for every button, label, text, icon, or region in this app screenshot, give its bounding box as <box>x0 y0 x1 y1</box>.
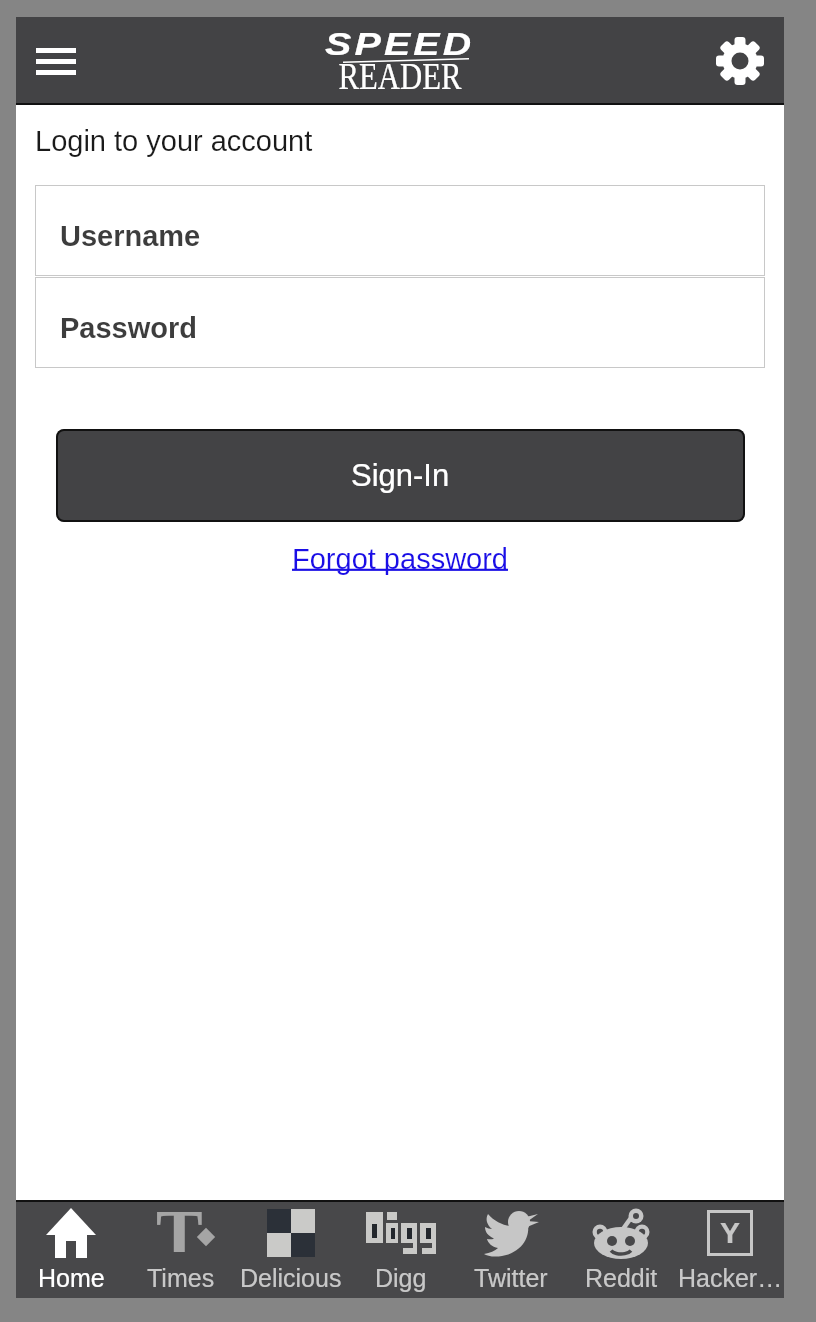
staticText: Home <box>38 1264 105 1292</box>
button[interactable]: Forgot password <box>292 543 508 575</box>
staticText: READER <box>339 56 461 97</box>
button[interactable] <box>710 31 770 91</box>
staticText: Hacker… <box>678 1264 783 1292</box>
staticText: Username <box>60 220 201 252</box>
staticText: Password <box>60 312 197 344</box>
staticText: Login to your account <box>35 125 313 157</box>
staticText: Twitter <box>474 1264 548 1292</box>
staticText: Times <box>147 1264 215 1292</box>
button[interactable]: Digg <box>346 1202 456 1298</box>
staticText: T <box>156 1196 203 1252</box>
button[interactable]: Password <box>35 277 765 368</box>
button[interactable]: Sign-In <box>56 429 745 522</box>
button[interactable]: Reddit <box>566 1202 676 1298</box>
button[interactable] <box>30 41 82 81</box>
staticText: Delicious <box>240 1264 342 1292</box>
button[interactable]: Twitter <box>456 1202 566 1298</box>
staticText: SPEED <box>325 27 475 62</box>
button[interactable]: Delicious <box>236 1202 346 1298</box>
staticText: Sign-In <box>351 458 450 493</box>
button[interactable]: Username <box>35 185 765 276</box>
staticText: Y <box>720 1216 741 1250</box>
button[interactable]: Home <box>16 1202 126 1298</box>
button[interactable]: T <box>126 1202 236 1298</box>
staticText: Digg <box>375 1264 427 1292</box>
button[interactable]: Y <box>676 1202 784 1298</box>
staticText: Reddit <box>585 1264 658 1292</box>
